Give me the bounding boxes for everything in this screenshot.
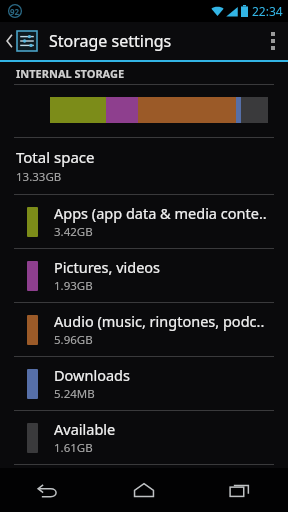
button[interactable]: Apps (app data & media conte.. (0, 195, 288, 248)
button[interactable]: Navigate up (0, 22, 41, 60)
button[interactable]: More options (258, 22, 288, 60)
staticText: Audio (music, ringtones, podc.. (54, 311, 265, 331)
button[interactable]: Available (0, 411, 288, 464)
staticText: Downloads (54, 365, 130, 385)
button[interactable]: Back (0, 468, 96, 512)
staticText: 13.33GB (16, 169, 62, 185)
staticText: 22:34 (252, 3, 283, 19)
staticText: Storage settings (49, 30, 172, 52)
staticText: 1.61GB (54, 440, 93, 456)
button[interactable]: Total space (0, 138, 288, 194)
staticText: 92 (10, 6, 20, 17)
button[interactable]: Recent apps (192, 468, 288, 512)
button[interactable]: Audio (music, ringtones, podc.. (0, 303, 288, 356)
staticText: 5.24MB (54, 386, 95, 402)
button[interactable]: Pictures, videos (0, 249, 288, 302)
staticText: Apps (app data & media conte.. (54, 203, 267, 223)
staticText: Total space (16, 147, 95, 167)
button[interactable]: Downloads (0, 357, 288, 410)
staticText: 5.96GB (54, 332, 93, 348)
staticText: 1.93GB (54, 278, 93, 294)
staticText: INTERNAL STORAGE (16, 66, 125, 81)
staticText: Pictures, videos (54, 257, 161, 277)
staticText: Available (54, 419, 116, 439)
staticText: 3.42GB (54, 224, 93, 240)
button[interactable]: Home (96, 468, 192, 512)
